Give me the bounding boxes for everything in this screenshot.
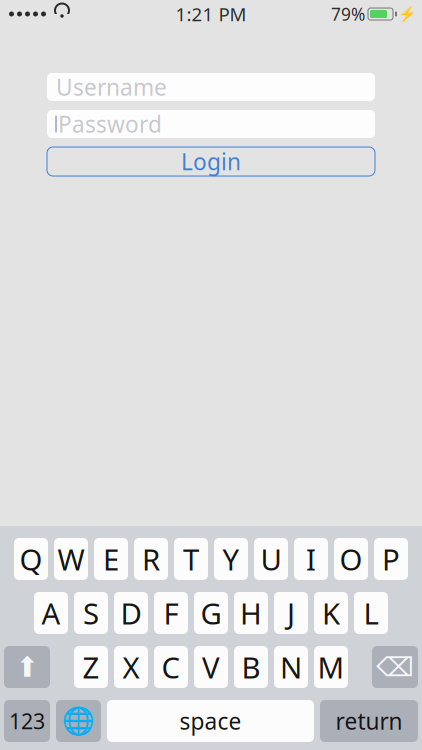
button[interactable]: Shift bbox=[4, 646, 50, 688]
staticText: Username bbox=[56, 72, 167, 102]
staticText: return bbox=[335, 706, 402, 736]
staticText: U bbox=[260, 539, 281, 578]
staticText: R bbox=[142, 539, 160, 578]
button[interactable]: C bbox=[154, 646, 188, 688]
staticText: M bbox=[317, 647, 344, 686]
staticText: Y bbox=[222, 539, 239, 578]
staticText: X bbox=[122, 647, 139, 686]
staticText: H bbox=[240, 593, 262, 632]
button[interactable]: Login bbox=[47, 147, 375, 176]
button[interactable]: V bbox=[194, 646, 228, 688]
staticText: C bbox=[161, 647, 180, 686]
staticText: S bbox=[83, 593, 99, 632]
staticText: Password bbox=[58, 109, 162, 139]
staticText: F bbox=[163, 593, 178, 632]
staticText: 123 bbox=[9, 707, 45, 735]
button[interactable]: K bbox=[314, 592, 348, 634]
staticText: space bbox=[179, 706, 241, 736]
button[interactable]: G bbox=[194, 592, 228, 634]
button[interactable]: space bbox=[107, 700, 314, 742]
button[interactable]: L bbox=[354, 592, 388, 634]
button[interactable]: N bbox=[274, 646, 308, 688]
staticText: V bbox=[202, 647, 220, 686]
button[interactable]: M bbox=[314, 646, 348, 688]
button[interactable]: Next keyboard bbox=[56, 700, 101, 742]
button[interactable]: Delete bbox=[372, 646, 418, 688]
staticText: J bbox=[287, 593, 295, 632]
staticText: D bbox=[120, 593, 141, 632]
staticText: G bbox=[200, 593, 221, 632]
staticText: 🌐 bbox=[62, 706, 95, 736]
staticText: 1:21 PM bbox=[175, 2, 246, 26]
button[interactable]: 123 bbox=[4, 700, 50, 742]
staticText: B bbox=[241, 647, 260, 686]
staticText: E bbox=[103, 539, 119, 578]
staticText: ⚡ bbox=[398, 6, 416, 22]
button[interactable]: D bbox=[114, 592, 148, 634]
button[interactable]: A bbox=[34, 592, 68, 634]
button[interactable]: E bbox=[94, 538, 128, 580]
button[interactable]: I bbox=[294, 538, 328, 580]
staticText: O bbox=[339, 539, 362, 578]
button[interactable]: return bbox=[320, 700, 418, 742]
button[interactable]: H bbox=[234, 592, 268, 634]
button[interactable]: Z bbox=[74, 646, 108, 688]
button[interactable]: T bbox=[174, 538, 208, 580]
staticText: Login bbox=[181, 146, 241, 176]
staticText: ⌫ bbox=[376, 652, 414, 682]
button[interactable]: P bbox=[374, 538, 408, 580]
staticText: 79% bbox=[331, 2, 365, 25]
staticText: W bbox=[57, 539, 84, 578]
button[interactable]: O bbox=[334, 538, 368, 580]
button[interactable]: Y bbox=[214, 538, 248, 580]
button[interactable]: X bbox=[114, 646, 148, 688]
button[interactable]: B bbox=[234, 646, 268, 688]
button[interactable]: J bbox=[274, 592, 308, 634]
button[interactable]: U bbox=[254, 538, 288, 580]
staticText: N bbox=[280, 647, 302, 686]
button[interactable]: F bbox=[154, 592, 188, 634]
staticText: L bbox=[363, 593, 378, 632]
staticText: A bbox=[41, 593, 60, 632]
staticText: Q bbox=[19, 539, 42, 578]
staticText: P bbox=[382, 539, 400, 578]
button[interactable]: W bbox=[54, 538, 88, 580]
button[interactable]: R bbox=[134, 538, 168, 580]
button[interactable]: S bbox=[74, 592, 108, 634]
staticText: I bbox=[306, 539, 316, 578]
button[interactable]: Q bbox=[14, 538, 48, 580]
staticText: K bbox=[322, 593, 340, 632]
staticText: T bbox=[183, 539, 199, 578]
staticText: ⬆ bbox=[15, 651, 38, 683]
staticText: Z bbox=[82, 647, 99, 686]
